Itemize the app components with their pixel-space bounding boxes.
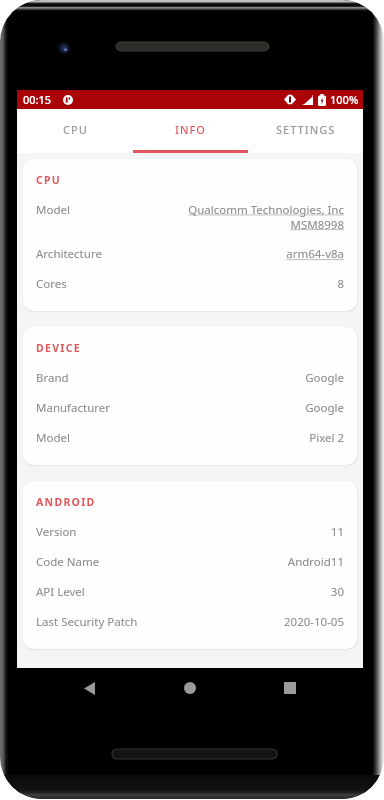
button[interactable]: Back	[71, 670, 107, 706]
button[interactable]: Architecture	[36, 246, 344, 262]
staticText: Code Name	[36, 554, 100, 570]
staticText: arm64-v8a	[186, 246, 344, 262]
staticText: CPU	[36, 173, 62, 187]
staticText: 2020-10-05	[186, 614, 344, 630]
staticText: 11	[186, 524, 344, 540]
button[interactable]: Model	[36, 202, 344, 232]
staticText: 00:15	[23, 92, 52, 107]
staticText: Google	[186, 370, 344, 386]
staticText: Cores	[36, 276, 67, 292]
button[interactable]: Version	[36, 524, 344, 540]
staticText: Model	[36, 202, 70, 218]
staticText: CPU	[63, 122, 88, 137]
button[interactable]: Code Name	[36, 554, 344, 570]
staticText: Google	[186, 400, 344, 416]
button[interactable]: Cores	[36, 276, 344, 292]
staticText: Brand	[36, 370, 69, 386]
button[interactable]: Model	[36, 430, 344, 446]
button[interactable]: Last Security Patch	[36, 614, 344, 630]
button[interactable]: Brand	[36, 370, 344, 386]
staticText: Version	[36, 524, 77, 540]
staticText: ANDROID	[36, 495, 96, 509]
button[interactable]: API Level	[36, 584, 344, 600]
staticText: 8	[186, 276, 344, 292]
button[interactable]: INFO	[133, 109, 248, 150]
staticText: Qualcomm Technologies, Inc MSM8998	[186, 202, 344, 232]
staticText: Manufacturer	[36, 400, 111, 416]
staticText: 100%	[330, 92, 359, 107]
staticText: Android11	[186, 554, 344, 570]
button[interactable]: Manufacturer	[36, 400, 344, 416]
button[interactable]: CPU	[17, 109, 133, 150]
button[interactable]: Home	[172, 670, 208, 706]
staticText: Last Security Patch	[36, 614, 138, 630]
staticText: DEVICE	[36, 341, 81, 355]
staticText: INFO	[175, 122, 206, 137]
staticText: SETTINGS	[276, 122, 336, 137]
staticText: Model	[36, 430, 70, 446]
button[interactable]: Recent apps	[272, 670, 308, 706]
button[interactable]: SETTINGS	[248, 109, 363, 150]
staticText: API Level	[36, 584, 85, 600]
staticText: Pixel 2	[186, 430, 344, 446]
staticText: 30	[186, 584, 344, 600]
staticText: Architecture	[36, 246, 102, 262]
